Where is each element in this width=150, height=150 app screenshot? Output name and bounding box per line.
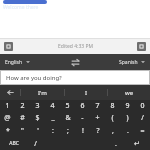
button[interactable]: English (0, 54, 62, 70)
button[interactable]: @ (0, 112, 15, 124)
button[interactable]: Spanish (88, 54, 150, 70)
staticText: / (141, 113, 144, 123)
staticText: How are you doing? (6, 74, 62, 82)
staticText: English (5, 59, 23, 66)
button[interactable]: ABC (0, 137, 27, 150)
staticText: ! (82, 126, 84, 136)
button[interactable]: 1 (0, 100, 15, 112)
staticText: 6 (80, 101, 85, 111)
staticText: & (65, 113, 71, 123)
button[interactable]: 0 (135, 100, 150, 112)
staticText: 7 (95, 101, 100, 111)
button[interactable]: 9 (120, 100, 135, 112)
staticText: 5 (65, 101, 70, 111)
button[interactable]: How are you doing? (0, 70, 150, 85)
staticText: ) (126, 113, 129, 123)
button[interactable]: Swap languages (62, 54, 88, 70)
button[interactable]: I (65, 85, 107, 100)
button[interactable]: / (135, 112, 150, 124)
button[interactable]: . (120, 124, 135, 137)
button[interactable]: 8 (105, 100, 120, 112)
staticText: = (140, 126, 145, 136)
button[interactable]: = (135, 124, 150, 137)
staticText: / (34, 139, 37, 149)
staticText: 0 (140, 101, 145, 111)
button[interactable]: ↵ (124, 137, 150, 150)
button[interactable]: ) (120, 112, 135, 124)
button[interactable]: # (15, 112, 30, 124)
staticText: ABC (9, 140, 19, 147)
staticText: 4 (50, 101, 55, 111)
staticText: I'm (38, 89, 47, 97)
staticText: " (21, 126, 24, 136)
staticText: . (115, 139, 117, 149)
staticText: ; (67, 126, 69, 136)
staticText: 2 (20, 101, 25, 111)
button[interactable]: ( (105, 112, 120, 124)
button[interactable]: 2 (15, 100, 30, 112)
button[interactable]: , (105, 124, 120, 137)
staticText: 3 (35, 101, 40, 111)
staticText: - (81, 113, 84, 123)
staticText: ↵ (134, 140, 140, 148)
button[interactable]: 3 (30, 100, 45, 112)
button[interactable]: 5 (60, 100, 75, 112)
button[interactable]: $ (30, 112, 45, 124)
staticText: I (85, 89, 88, 97)
button[interactable]: 4 (45, 100, 60, 112)
button[interactable]: 6 (75, 100, 90, 112)
button[interactable]: ? (90, 124, 105, 137)
staticText: @ (4, 113, 11, 123)
button[interactable]: : (45, 124, 60, 137)
button[interactable]: Share (137, 42, 146, 51)
staticText: . (127, 126, 129, 136)
button[interactable]: 7 (90, 100, 105, 112)
button[interactable]: ; (60, 124, 75, 137)
staticText: 9 (125, 101, 130, 111)
button[interactable]: - (75, 112, 90, 124)
staticText: Spanish (119, 59, 138, 66)
staticText: , (112, 126, 114, 136)
button[interactable]: * (0, 124, 15, 137)
staticText: ( (111, 113, 114, 123)
staticText: _ (51, 113, 55, 123)
staticText: 1 (5, 101, 10, 111)
staticText: we (125, 89, 134, 97)
button[interactable]: " (15, 124, 30, 137)
staticText: + (95, 113, 100, 123)
button[interactable]: _ (45, 112, 60, 124)
staticText: Welcome there (3, 4, 39, 11)
button[interactable]: Copy (4, 42, 13, 51)
staticText: Edited 4:33 PM (58, 43, 93, 50)
staticText: $ (35, 113, 40, 123)
button[interactable]: Previous suggestions (0, 85, 20, 100)
button[interactable]: we (108, 85, 150, 100)
button[interactable]: ' (30, 124, 45, 137)
staticText: ? (96, 126, 100, 136)
button[interactable]: ! (75, 124, 90, 137)
staticText: 8 (110, 101, 115, 111)
button[interactable]: & (60, 112, 75, 124)
staticText: : (52, 126, 54, 136)
staticText: * (6, 126, 10, 136)
button[interactable]: I'm (21, 85, 64, 100)
staticText: # (20, 113, 25, 123)
button[interactable]: / (27, 137, 43, 150)
staticText: ' (37, 126, 39, 136)
button[interactable]: + (90, 112, 105, 124)
button[interactable]: . (108, 137, 124, 150)
